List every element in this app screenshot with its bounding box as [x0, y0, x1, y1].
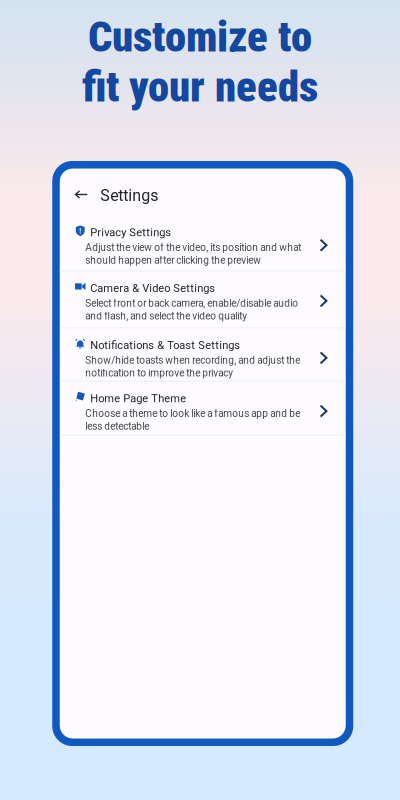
staticText: Customize to — [88, 12, 312, 62]
staticText: Home Page Theme — [90, 392, 186, 405]
staticText: fit your needs — [82, 62, 318, 112]
staticText: Adjust the view of the video, its positi… — [85, 242, 301, 253]
staticText: Settings — [100, 186, 158, 205]
staticText: Select front or back camera, enable/disa… — [85, 297, 298, 309]
button[interactable]: Notifications & Toast Settings — [60, 328, 346, 381]
staticText: Privacy Settings — [90, 226, 171, 239]
button[interactable]: Camera & Video Settings — [60, 271, 346, 327]
staticText: Show/hide toasts when recording, and adj… — [85, 354, 300, 366]
staticText: and flash, and select the video quality — [85, 310, 247, 322]
button[interactable]: Back — [60, 182, 97, 206]
staticText: Camera & Video Settings — [90, 282, 215, 295]
staticText: should happen after clicking the preview — [85, 254, 261, 266]
staticText: notification to improve the privacy — [85, 367, 233, 379]
button[interactable]: Privacy Settings — [60, 216, 346, 270]
staticText: Choose a theme to look like a famous app… — [85, 408, 300, 419]
button[interactable]: Home Page Theme — [60, 382, 346, 435]
staticText: less detectable — [85, 420, 149, 432]
staticText: Notifications & Toast Settings — [90, 339, 240, 352]
